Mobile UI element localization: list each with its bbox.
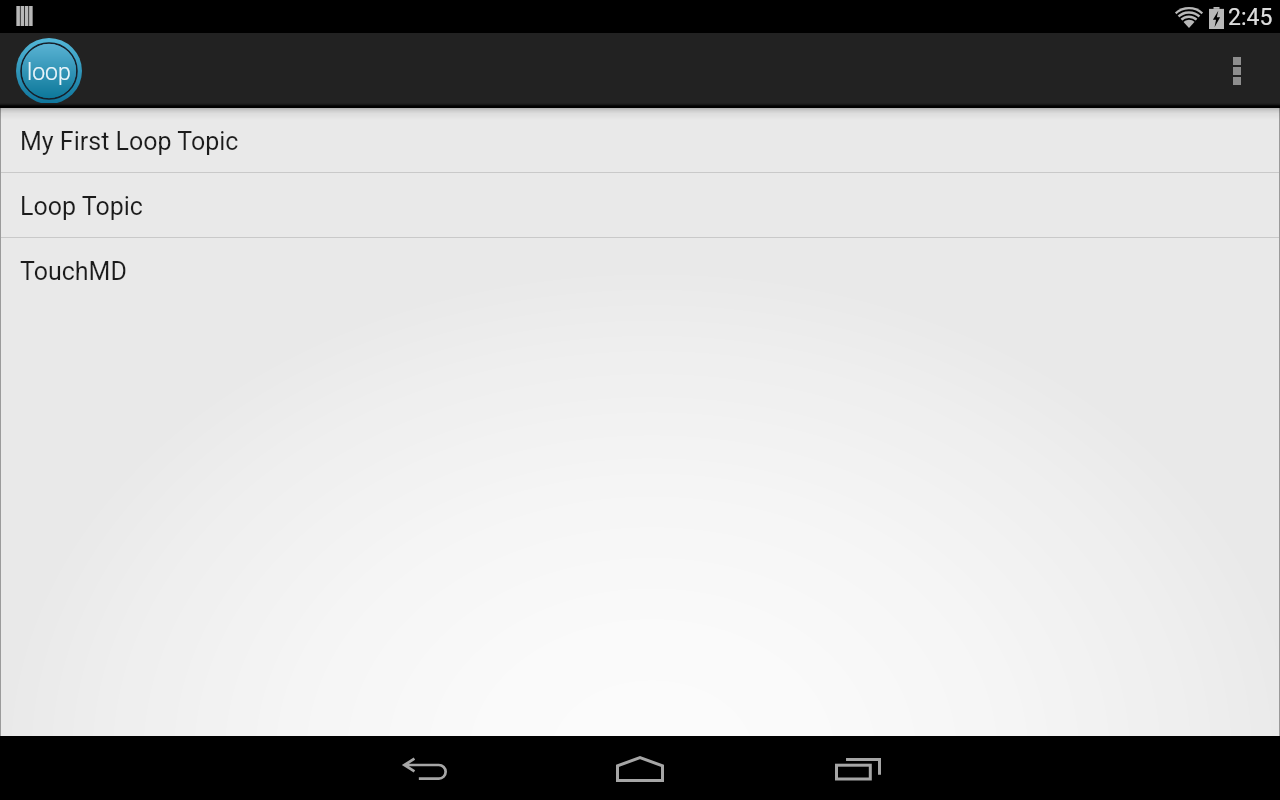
button[interactable]: Loop, open navigation — [16, 38, 82, 104]
button[interactable]: Recent apps — [824, 736, 890, 800]
button[interactable]: TouchMD — [0, 238, 1280, 302]
staticText: Loop Topic — [20, 192, 143, 221]
button[interactable]: Loop Topic — [0, 173, 1280, 237]
button[interactable]: Home — [607, 736, 673, 800]
button[interactable]: Back — [390, 736, 456, 800]
button[interactable]: My First Loop Topic — [0, 108, 1280, 172]
staticText: TouchMD — [20, 257, 127, 286]
staticText: 2:45 — [1228, 4, 1273, 31]
staticText: loop — [27, 59, 71, 86]
staticText: My First Loop Topic — [20, 127, 239, 156]
button[interactable]: More options — [1208, 33, 1266, 108]
